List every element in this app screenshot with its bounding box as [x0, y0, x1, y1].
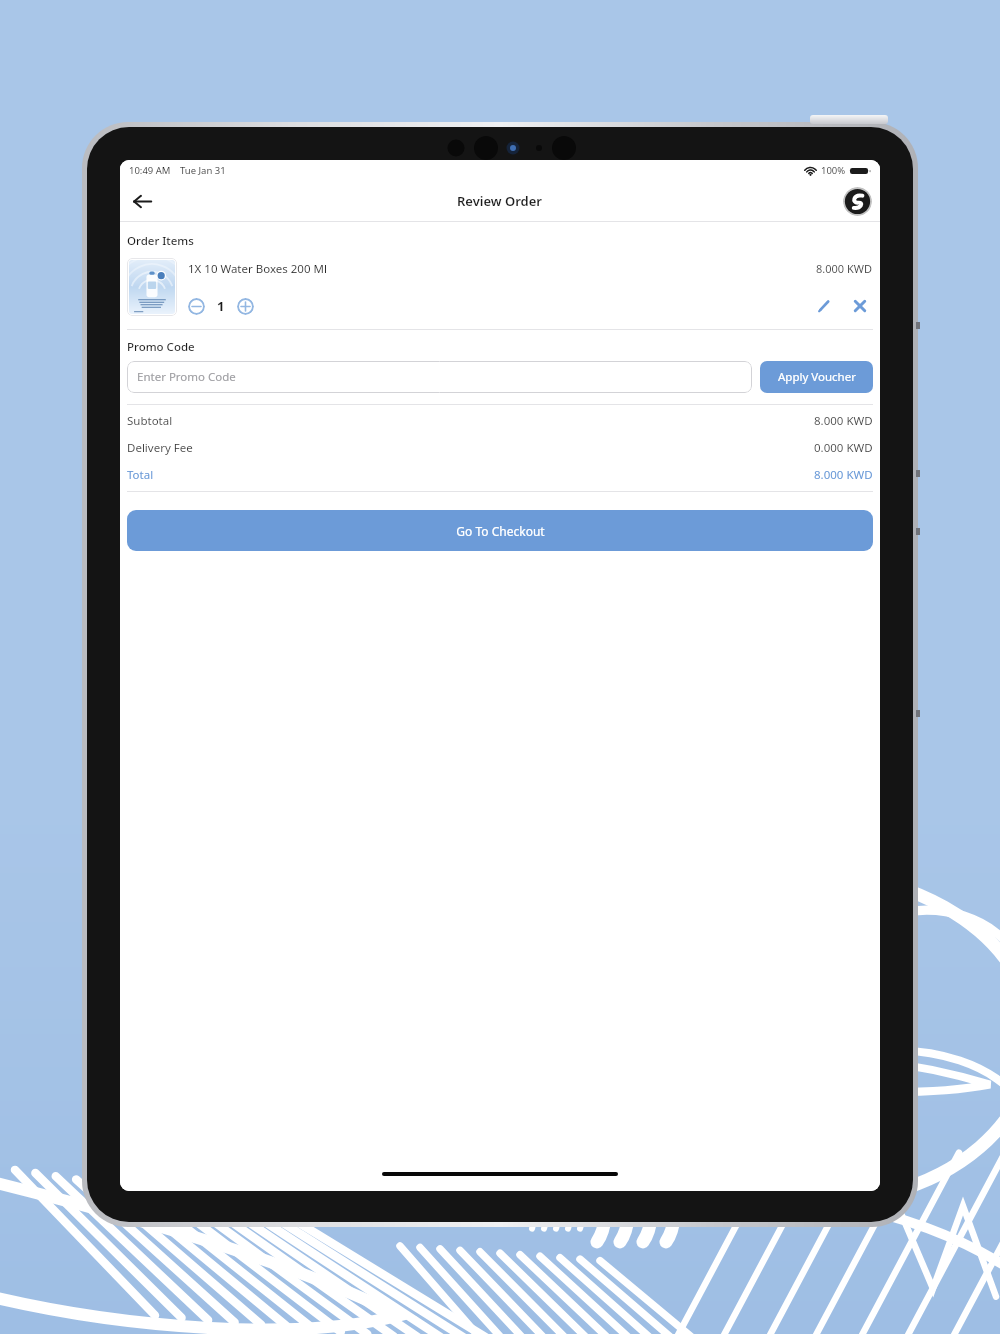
- staticText: 1: [217, 297, 225, 315]
- staticText: 10:49 AM: [129, 164, 171, 177]
- staticText: Review Order: [457, 192, 543, 210]
- staticText: Enter Promo Code: [137, 369, 236, 385]
- button[interactable]: Remove item: [847, 293, 873, 319]
- staticText: 8.000 KWD: [814, 467, 873, 483]
- staticText: 1X 10 Water Boxes 200 Ml: [188, 261, 327, 277]
- staticText: 0.000 KWD: [814, 440, 873, 456]
- staticText: Promo Code: [127, 339, 195, 355]
- button[interactable]: Edit item: [811, 293, 837, 319]
- button[interactable]: Back: [125, 184, 159, 218]
- staticText: 100%: [821, 164, 846, 177]
- staticText: 8.000 KWD: [816, 261, 873, 276]
- staticText: Delivery Fee: [127, 440, 193, 456]
- button[interactable]: Enter Promo Code: [127, 361, 752, 393]
- button[interactable]: Increase quantity: [237, 298, 254, 315]
- staticText: Subtotal: [127, 413, 173, 429]
- button[interactable]: Apply Voucher: [760, 361, 873, 393]
- button[interactable]: Go To Checkout: [127, 510, 873, 551]
- staticText: Order Items: [127, 233, 194, 249]
- staticText: Go To Checkout: [456, 523, 545, 539]
- staticText: Apply Voucher: [778, 369, 856, 385]
- button[interactable]: Decrease quantity: [188, 298, 205, 315]
- staticText: Tue Jan 31: [180, 164, 226, 177]
- staticText: Total: [127, 467, 154, 483]
- staticText: 8.000 KWD: [814, 413, 873, 429]
- button[interactable]: Account: [843, 187, 872, 216]
